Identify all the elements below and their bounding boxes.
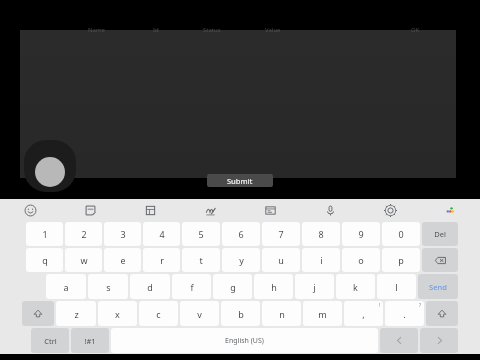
staticText: Id — [153, 26, 159, 32]
staticText: s — [106, 281, 111, 293]
staticText: Send — [429, 282, 447, 292]
staticText: p — [398, 254, 404, 266]
button[interactable]: n — [262, 301, 301, 326]
staticText: r — [160, 254, 164, 266]
button[interactable]: Backspace — [422, 248, 458, 272]
staticText: Del — [434, 229, 446, 239]
staticText: x — [115, 308, 120, 320]
staticText: 0 — [398, 228, 404, 240]
button[interactable]: o — [342, 248, 380, 272]
button[interactable]: Shift — [426, 301, 458, 326]
button[interactable]: j — [295, 274, 334, 299]
button[interactable]: b — [221, 301, 260, 326]
button[interactable]: Clipboard — [120, 199, 180, 221]
button[interactable]: Shift — [22, 301, 54, 326]
staticText: w — [80, 254, 88, 266]
staticText: 3 — [120, 228, 126, 240]
button[interactable]: u — [262, 248, 300, 272]
button[interactable]: Emoji — [0, 199, 60, 221]
staticText: Submit — [227, 176, 253, 186]
staticText: OK — [411, 26, 420, 32]
button[interactable]: Space — [111, 328, 378, 353]
button[interactable]: f — [172, 274, 211, 299]
staticText: 1 — [42, 228, 48, 240]
staticText: u — [278, 254, 284, 266]
button[interactable]: x — [98, 301, 137, 326]
button[interactable]: 4 — [143, 222, 180, 246]
button[interactable]: l — [377, 274, 416, 299]
button[interactable]: 2 — [65, 222, 102, 246]
staticText: f — [190, 281, 194, 293]
staticText: j — [313, 281, 316, 293]
staticText: o — [358, 254, 364, 266]
staticText: 5 — [198, 228, 204, 240]
staticText: z — [74, 308, 79, 320]
button[interactable]: a — [46, 274, 86, 299]
staticText: Name — [88, 26, 105, 32]
button[interactable]: 3 — [104, 222, 141, 246]
staticText: v — [197, 308, 202, 320]
staticText: !#1 — [84, 336, 96, 346]
staticText: b — [238, 308, 244, 320]
button[interactable]: r — [143, 248, 180, 272]
staticText: 4 — [159, 228, 165, 240]
button[interactable]: d — [130, 274, 170, 299]
button[interactable]: Settings — [360, 199, 420, 221]
staticText: English (US) — [225, 336, 264, 346]
staticText: a — [63, 281, 69, 293]
button[interactable]: More options — [420, 199, 480, 221]
button[interactable]: 7 — [262, 222, 300, 246]
button[interactable]: y — [222, 248, 260, 272]
button[interactable]: Submit — [207, 174, 273, 187]
button[interactable]: 6 — [222, 222, 260, 246]
button[interactable]: g — [213, 274, 252, 299]
staticText: l — [395, 281, 398, 293]
staticText: . — [403, 308, 406, 320]
staticText: e — [120, 254, 126, 266]
button[interactable]: t — [182, 248, 220, 272]
button[interactable]: Symbols — [71, 328, 109, 353]
button[interactable]: z — [56, 301, 96, 326]
staticText: c — [156, 308, 161, 320]
button[interactable]: p — [382, 248, 420, 272]
button[interactable]: v — [180, 301, 219, 326]
staticText: m — [318, 308, 327, 320]
button[interactable]: Voice input — [300, 199, 360, 221]
button[interactable]: Ctrl — [31, 328, 69, 353]
button[interactable]: Previous — [380, 328, 418, 353]
button[interactable]: ! — [344, 301, 383, 326]
button[interactable]: Stickers — [60, 199, 120, 221]
staticText: 2 — [81, 228, 87, 240]
staticText: Status — [203, 26, 221, 32]
button[interactable]: h — [254, 274, 293, 299]
staticText: 7 — [278, 228, 284, 240]
button[interactable]: 0 — [382, 222, 420, 246]
button[interactable]: w — [65, 248, 102, 272]
button[interactable]: i — [302, 248, 340, 272]
staticText: h — [271, 281, 277, 293]
button[interactable]: c — [139, 301, 178, 326]
staticText: g — [230, 281, 236, 293]
button[interactable]: ? — [385, 301, 424, 326]
staticText: ! — [379, 302, 381, 309]
button[interactable]: Translate — [240, 199, 300, 221]
button[interactable]: 5 — [182, 222, 220, 246]
button[interactable]: k — [336, 274, 375, 299]
button[interactable]: Send — [418, 274, 458, 299]
button[interactable]: 8 — [302, 222, 340, 246]
staticText: 8 — [318, 228, 324, 240]
staticText: Ctrl — [44, 336, 57, 346]
button[interactable]: s — [88, 274, 128, 299]
button[interactable]: Next — [420, 328, 458, 353]
staticText: y — [239, 254, 244, 266]
button[interactable]: Delete — [422, 222, 458, 246]
button[interactable]: 9 — [342, 222, 380, 246]
staticText: 9 — [358, 228, 364, 240]
staticText: Value — [265, 26, 281, 32]
button[interactable]: e — [104, 248, 141, 272]
button[interactable]: 1 — [26, 222, 63, 246]
button[interactable]: q — [26, 248, 63, 272]
button[interactable]: Joystick control — [24, 140, 76, 192]
button[interactable]: Handwriting — [180, 199, 240, 221]
button[interactable]: m — [303, 301, 342, 326]
